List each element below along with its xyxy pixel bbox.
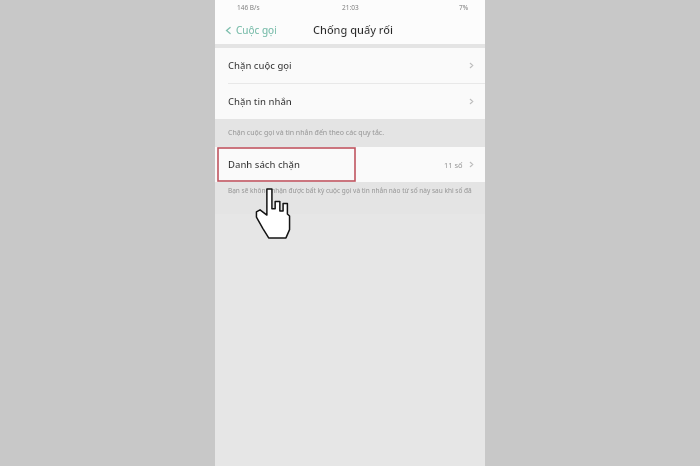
button[interactable]: Danh sách chặn bbox=[215, 147, 485, 182]
staticText: Cuộc gọi bbox=[236, 23, 277, 37]
button[interactable]: Cuộc gọi bbox=[215, 19, 283, 41]
staticText: 146 B/s bbox=[237, 3, 260, 12]
staticText: Bạn sẽ không nhận được bất kỳ cuộc gọi v… bbox=[228, 186, 472, 195]
staticText: 7% bbox=[459, 3, 469, 12]
staticText: Chặn tin nhắn bbox=[228, 95, 292, 108]
button[interactable]: Chặn tin nhắn bbox=[215, 84, 485, 119]
button[interactable]: Chặn cuộc gọi bbox=[215, 48, 485, 83]
staticText: 21:03 bbox=[342, 3, 359, 12]
staticText: 11 số bbox=[444, 160, 463, 170]
staticText: Chặn cuộc gọi bbox=[228, 59, 292, 72]
other: Pointer bbox=[255, 188, 291, 240]
staticText: Chống quấy rối bbox=[313, 22, 393, 37]
staticText: Danh sách chặn bbox=[228, 158, 300, 171]
staticText: Chặn cuộc gọi và tin nhắn đến theo các q… bbox=[228, 128, 385, 138]
